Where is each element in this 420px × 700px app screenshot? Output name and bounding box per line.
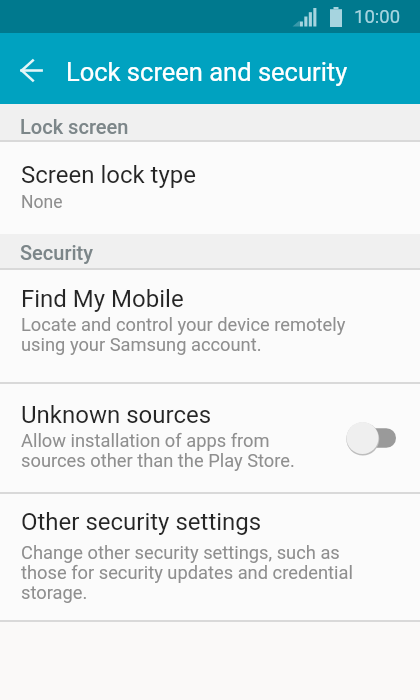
button[interactable] bbox=[0, 33, 62, 104]
staticText: 10:00 bbox=[354, 6, 401, 28]
button[interactable]: Unknown sources bbox=[0, 384, 420, 492]
staticText: Locate and control your device remotely … bbox=[21, 314, 346, 355]
button[interactable]: Other security settings bbox=[0, 494, 420, 620]
staticText: None bbox=[21, 192, 63, 213]
staticText: Other security settings bbox=[21, 508, 262, 536]
button[interactable]: Find My Mobile bbox=[0, 270, 420, 382]
staticText: Screen lock type bbox=[21, 161, 196, 189]
staticText: Find My Mobile bbox=[21, 285, 184, 313]
button[interactable] bbox=[346, 421, 396, 455]
staticText: Change other security settings, such as … bbox=[21, 542, 353, 603]
staticText: Allow installation of apps from sources … bbox=[21, 430, 295, 471]
staticText: Lock screen and security bbox=[66, 57, 348, 87]
staticText: Security bbox=[20, 241, 93, 264]
button[interactable]: Screen lock type bbox=[0, 142, 420, 234]
staticText: Unknown sources bbox=[21, 401, 212, 429]
staticText: Lock screen bbox=[20, 115, 129, 138]
